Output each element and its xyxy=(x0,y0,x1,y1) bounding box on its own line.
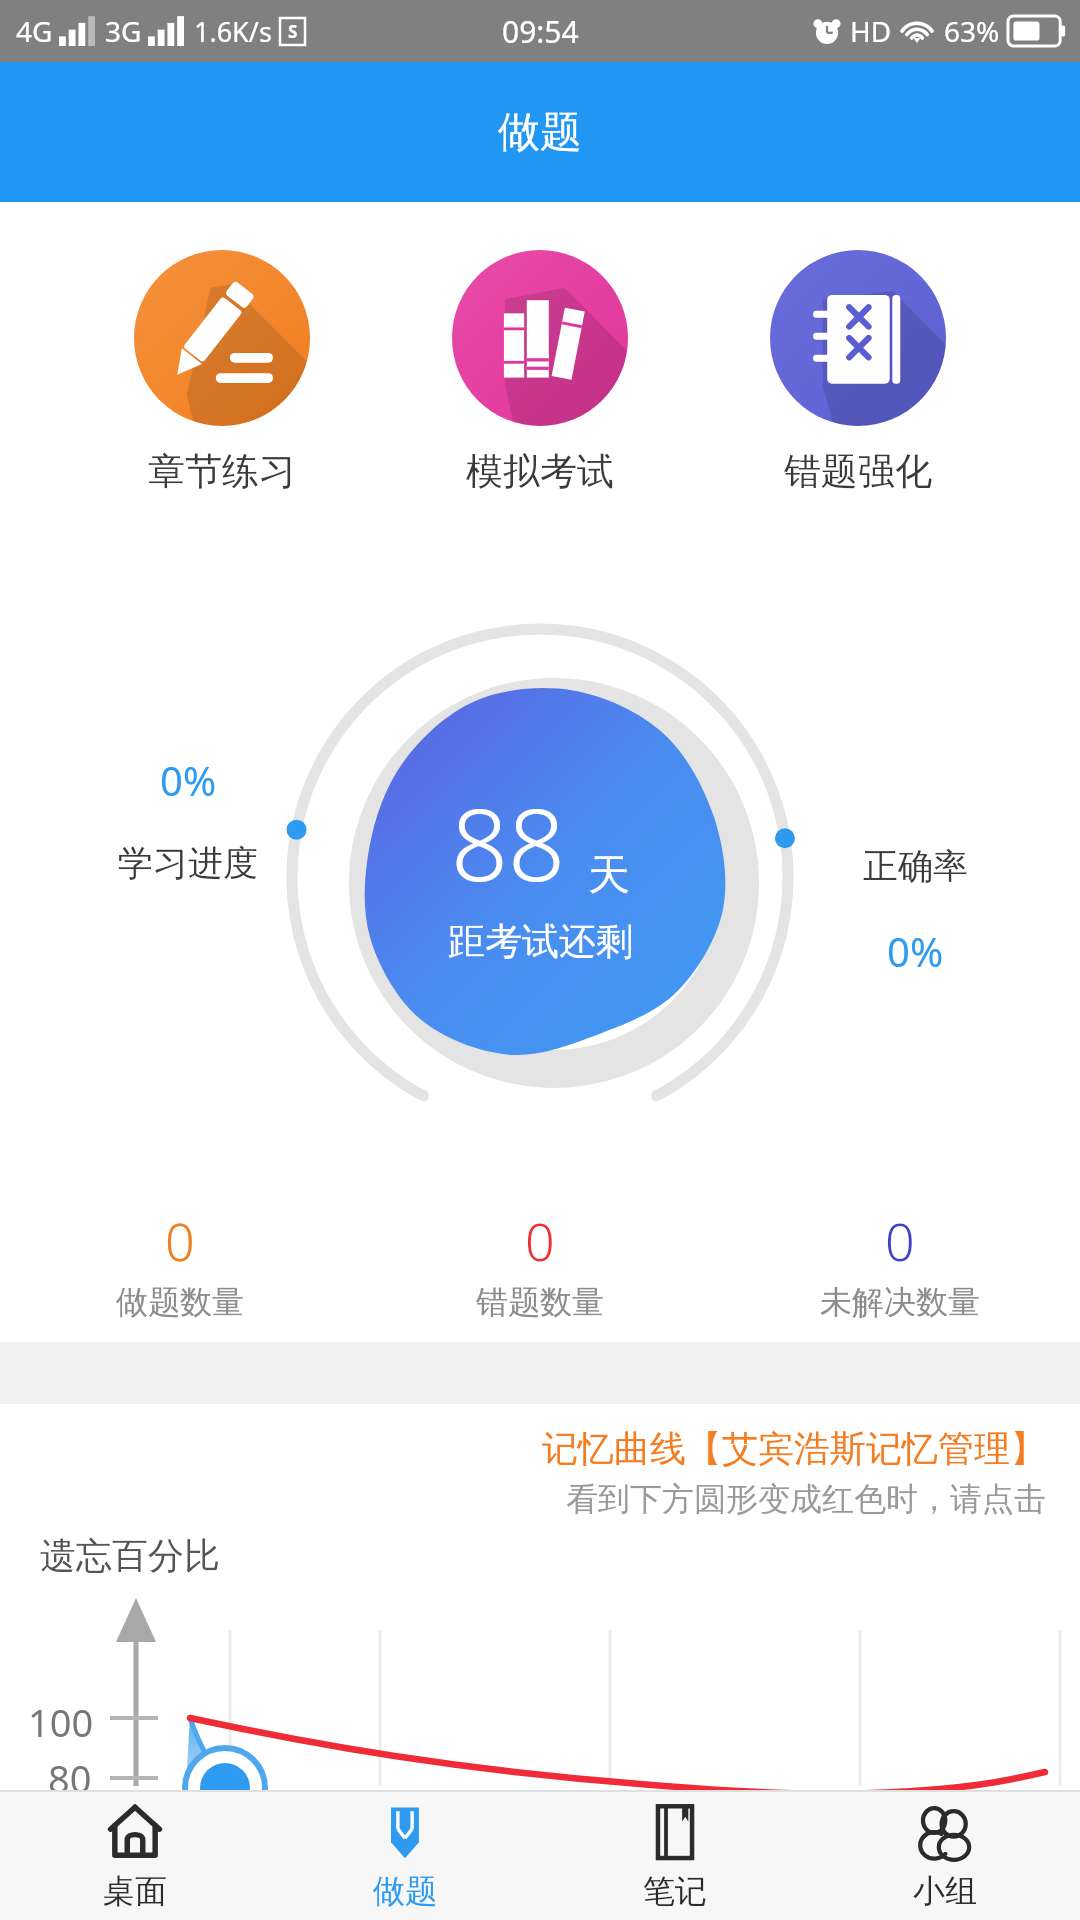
button[interactable]: 桌面 xyxy=(0,1792,270,1920)
staticText: 3G xyxy=(105,12,142,50)
staticText: 63% xyxy=(944,12,1000,50)
staticText: 1.6K/s xyxy=(194,13,272,50)
staticText: 0 xyxy=(525,1205,555,1276)
staticText: 距考试还剩 xyxy=(448,918,633,965)
staticText: 学习进度 xyxy=(118,841,258,885)
staticText: 做题数量 xyxy=(116,1282,244,1322)
staticText: 模拟考试 xyxy=(466,448,614,495)
button[interactable]: 做题 xyxy=(270,1792,540,1920)
staticText: 章节练习 xyxy=(148,448,296,495)
button[interactable]: 小组 xyxy=(810,1792,1080,1920)
button[interactable]: 笔记 xyxy=(540,1792,810,1920)
staticText: 笔记 xyxy=(643,1871,707,1911)
staticText: 错题数量 xyxy=(476,1282,604,1322)
staticText: 80 xyxy=(48,1752,92,1804)
staticText: 4G xyxy=(16,12,53,50)
button[interactable]: 模拟考试 xyxy=(444,246,636,499)
button[interactable]: 章节练习 xyxy=(126,246,318,499)
staticText: HD xyxy=(850,12,892,50)
staticText: 0% xyxy=(887,924,944,978)
staticText: 未解决数量 xyxy=(820,1282,980,1322)
button[interactable]: 0 xyxy=(0,1201,360,1326)
staticText: 记忆曲线【艾宾浩斯记忆管理】 xyxy=(542,1426,1046,1471)
staticText: 桌面 xyxy=(103,1871,167,1911)
staticText: 做题 xyxy=(373,1871,437,1911)
staticText: 正确率 xyxy=(863,844,968,888)
staticText: S xyxy=(288,20,298,43)
staticText: 88 xyxy=(451,774,566,910)
staticText: 小组 xyxy=(913,1871,977,1911)
button[interactable]: 0 xyxy=(360,1201,720,1326)
staticText: 错题强化 xyxy=(784,448,932,495)
button[interactable]: 0 xyxy=(720,1201,1080,1326)
staticText: 0 xyxy=(165,1205,195,1276)
staticText: 天 xyxy=(588,849,630,902)
button[interactable]: 错题强化 xyxy=(762,246,954,499)
staticText: 看到下方圆形变成红色时，请点击 xyxy=(566,1479,1046,1519)
staticText: 0% xyxy=(160,753,217,807)
staticText: 0 xyxy=(885,1205,915,1276)
staticText: 遗忘百分比 xyxy=(40,1533,220,1578)
staticText: 做题 xyxy=(498,106,582,159)
staticText: 09:54 xyxy=(502,11,579,52)
staticText: 100 xyxy=(28,1696,94,1748)
